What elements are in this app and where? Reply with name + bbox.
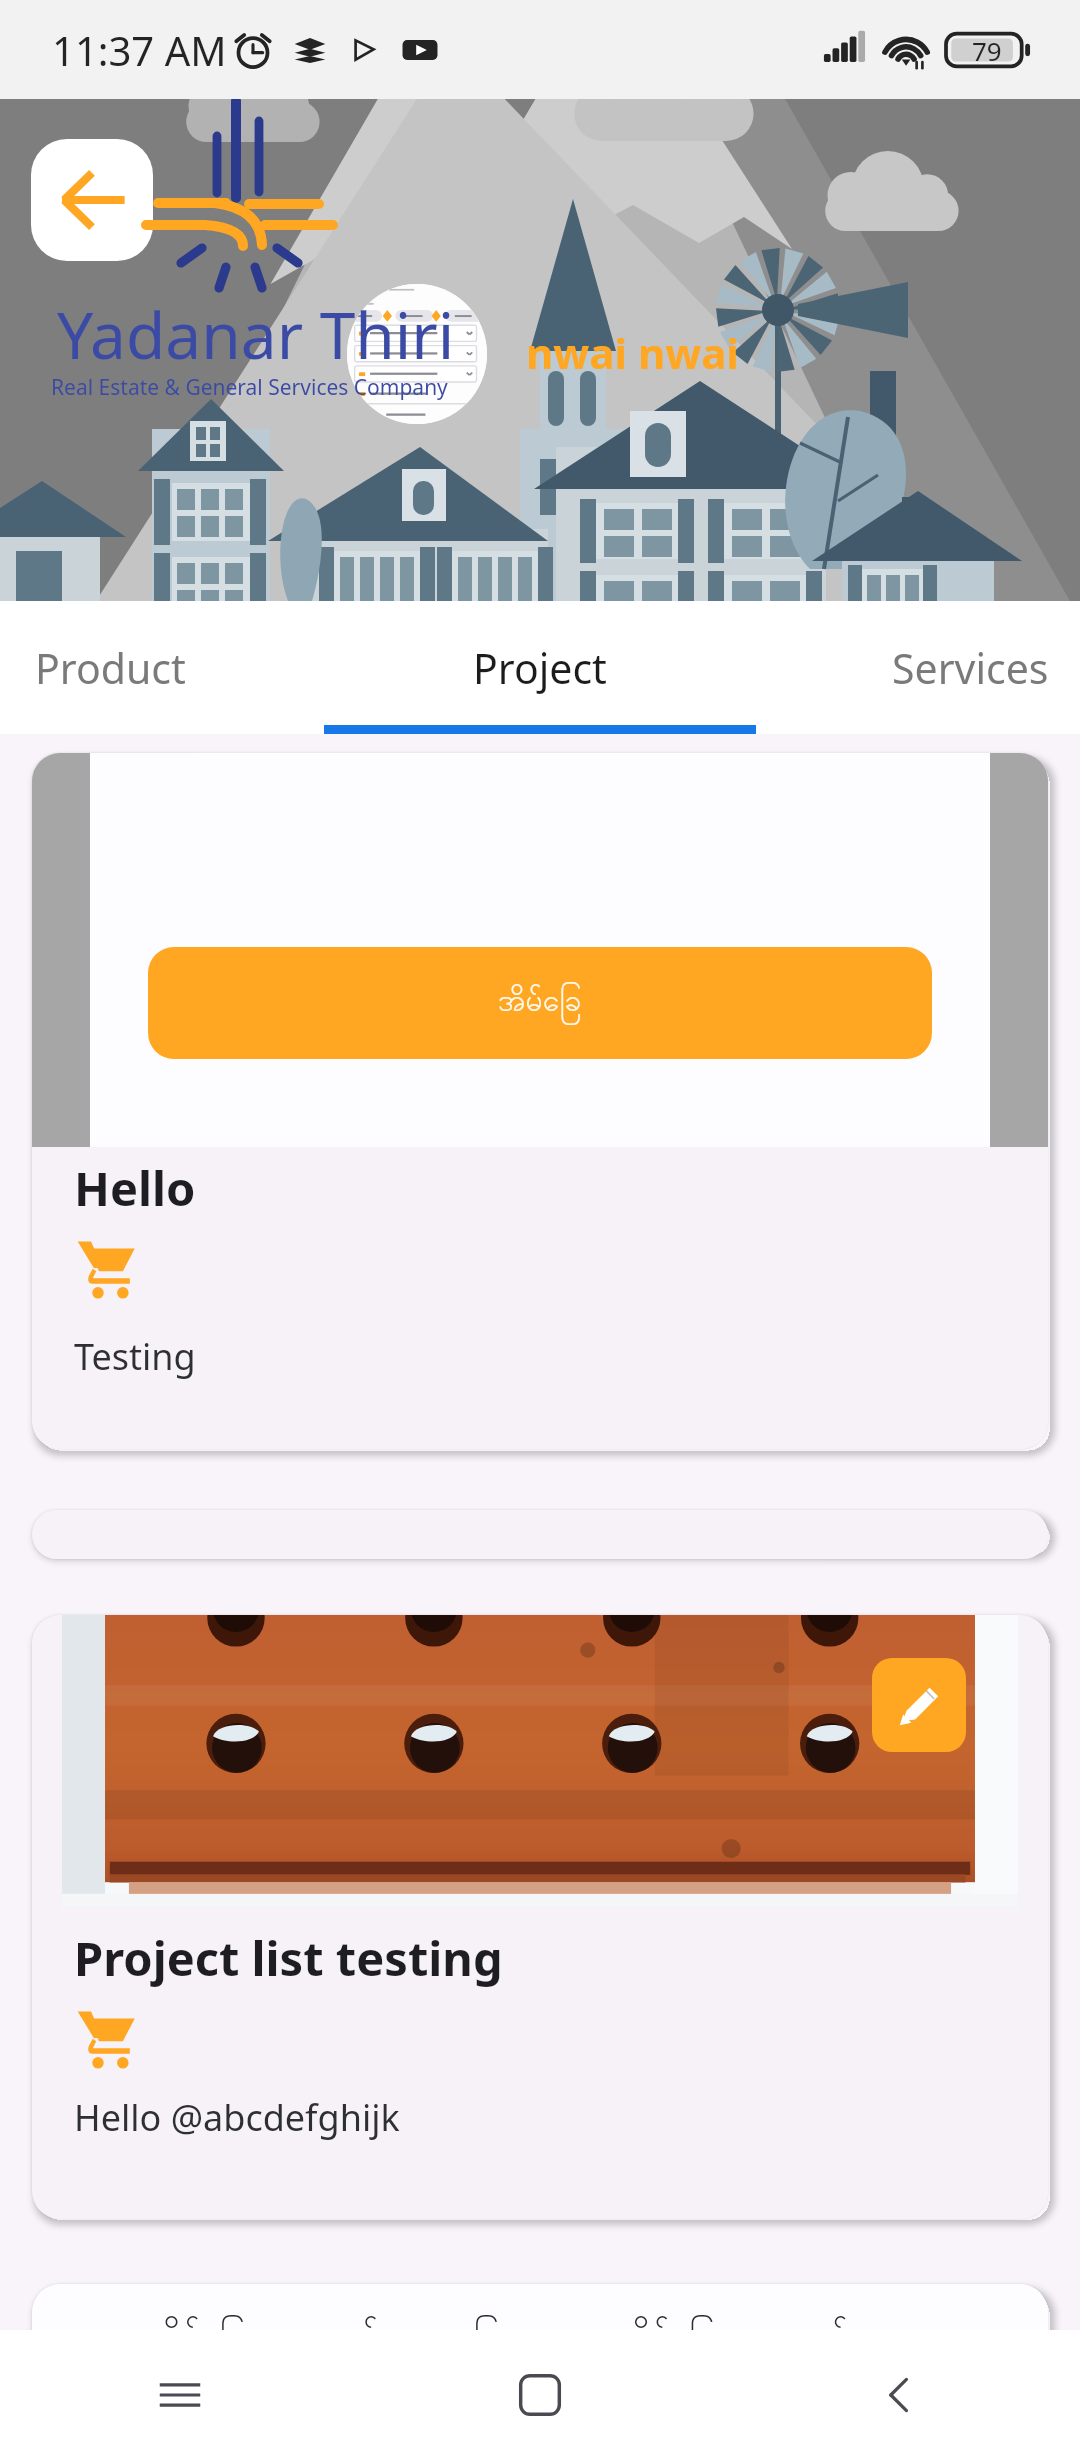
button[interactable]: Project: [432, 601, 648, 734]
staticText: 11:37 AM: [52, 23, 227, 77]
button[interactable]: Home: [360, 2330, 720, 2460]
staticText: Services: [892, 640, 1049, 696]
staticText: Hello @abcdefghijk: [74, 2093, 400, 2142]
staticText: Project list testing: [74, 1926, 503, 1990]
button[interactable]: Edit: [32, 1615, 1048, 2219]
button[interactable]: Recents: [0, 2330, 360, 2460]
button[interactable]: အိမ်ခြေ များ အခန်းများ အခြား များစွာ အိမ…: [32, 2284, 1048, 2404]
button[interactable]: Profile: [347, 284, 487, 424]
staticText: Yadanar Thiri: [57, 291, 455, 378]
staticText: အိမ်ခြေ များ အခန်းများ အခြား များစွာ အိမ…: [150, 2310, 856, 2363]
staticText: အိမ်ခြေ: [498, 981, 582, 1025]
button[interactable]: Edit: [872, 1658, 966, 1752]
staticText: nwai nwai: [526, 324, 739, 381]
button[interactable]: အိမ်ခြေ: [148, 947, 932, 1059]
button[interactable]: Back: [720, 2330, 1080, 2460]
button[interactable]: Back: [31, 139, 153, 261]
staticText: Product: [35, 640, 186, 696]
button[interactable]: Services: [862, 601, 1078, 734]
staticText: 79: [972, 33, 1002, 68]
staticText: Hello: [74, 1156, 196, 1220]
staticText: Real Estate & General Services Company: [51, 373, 448, 402]
staticText: Testing: [74, 1332, 196, 1381]
button[interactable]: အိမ်ခြေ: [32, 753, 1048, 1449]
staticText: Project: [473, 640, 607, 696]
button[interactable]: Product: [2, 601, 218, 734]
